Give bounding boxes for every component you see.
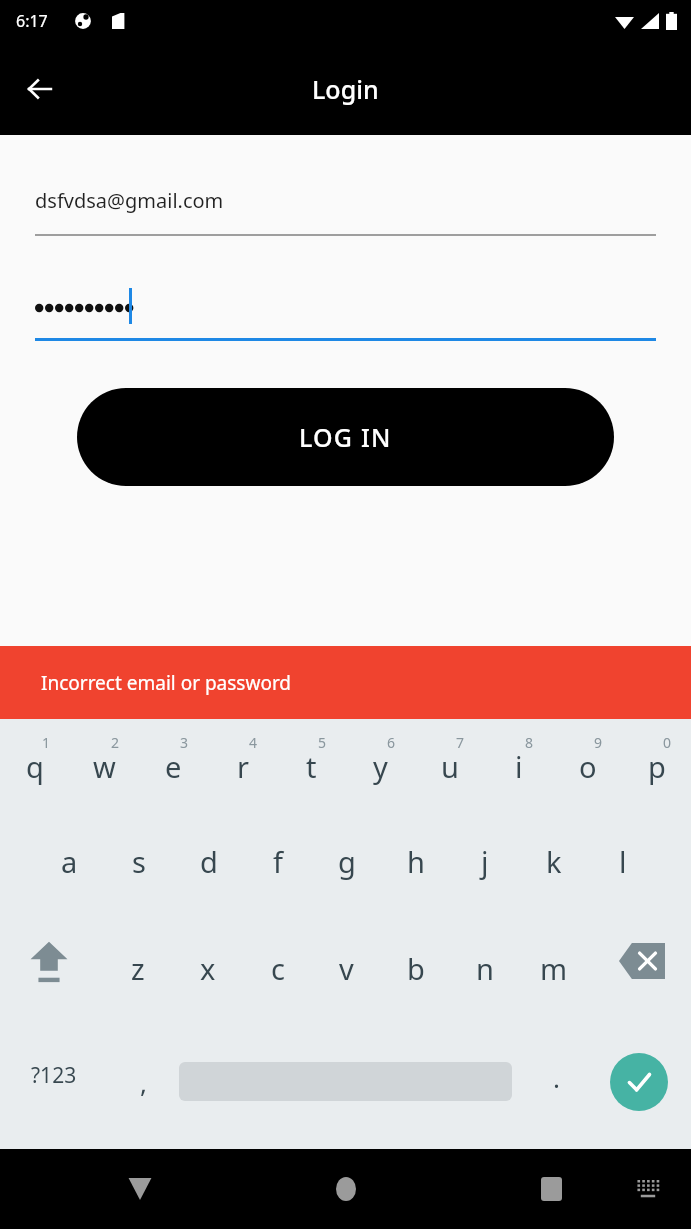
- staticText: o: [579, 747, 597, 786]
- staticText: 9: [594, 733, 603, 752]
- button[interactable]: c: [243, 933, 312, 1040]
- button[interactable]: 3: [139, 719, 208, 826]
- button[interactable]: h: [381, 826, 450, 933]
- button[interactable]: dsfvdsa@gmail.com: [35, 187, 656, 236]
- staticText: .: [553, 1060, 560, 1095]
- staticText: h: [407, 842, 425, 881]
- button[interactable]: 4: [208, 719, 277, 826]
- button[interactable]: 1: [0, 719, 70, 826]
- staticText: 2: [111, 733, 120, 752]
- button[interactable]: Shift: [14, 933, 84, 1013]
- staticText: u: [441, 747, 459, 786]
- staticText: r: [237, 747, 249, 786]
- staticText: f: [273, 842, 283, 881]
- button[interactable]: d: [174, 826, 243, 933]
- staticText: t: [306, 747, 317, 786]
- button[interactable]: Home: [316, 1159, 376, 1219]
- staticText: 1: [42, 733, 51, 752]
- button[interactable]: f: [243, 826, 312, 933]
- button[interactable]: a: [34, 826, 104, 933]
- staticText: 7: [456, 733, 465, 752]
- staticText: i: [515, 747, 523, 786]
- staticText: k: [546, 842, 562, 881]
- button[interactable]: 2: [70, 719, 139, 826]
- staticText: d: [200, 842, 218, 881]
- staticText: j: [481, 842, 489, 881]
- button[interactable]: g: [312, 826, 381, 933]
- staticText: w: [93, 747, 116, 786]
- button[interactable]: s: [104, 826, 174, 933]
- button[interactable]: k: [519, 826, 588, 933]
- staticText: Incorrect email or password: [41, 670, 292, 696]
- staticText: v: [339, 949, 354, 988]
- button[interactable]: 7: [415, 719, 484, 826]
- button[interactable]: j: [450, 826, 519, 933]
- staticText: 6: [387, 733, 396, 752]
- button[interactable]: ?123: [16, 1040, 92, 1110]
- staticText: x: [200, 949, 216, 988]
- button[interactable]: LOG IN: [77, 388, 614, 486]
- button[interactable]: 6: [346, 719, 415, 826]
- button[interactable]: 9: [553, 719, 622, 826]
- button[interactable]: Back: [110, 1159, 170, 1219]
- staticText: 6:17: [16, 10, 48, 32]
- button[interactable]: [35, 288, 656, 341]
- staticText: p: [648, 747, 666, 786]
- button[interactable]: Period: [528, 1040, 584, 1110]
- staticText: 4: [249, 733, 258, 752]
- staticText: n: [476, 949, 494, 988]
- button[interactable]: Comma: [115, 1040, 171, 1110]
- button[interactable]: Incorrect email or password: [0, 646, 691, 719]
- button[interactable]: Recents: [521, 1159, 581, 1219]
- staticText: ?123: [31, 1061, 77, 1090]
- button[interactable]: 0: [622, 719, 691, 826]
- staticText: 3: [180, 733, 189, 752]
- button[interactable]: 5: [277, 719, 346, 826]
- staticText: q: [26, 747, 44, 786]
- staticText: dsfvdsa@gmail.com: [35, 187, 224, 214]
- staticText: l: [619, 842, 627, 881]
- button[interactable]: b: [381, 933, 450, 1040]
- staticText: a: [61, 842, 78, 881]
- button[interactable]: Backspace: [607, 933, 677, 1013]
- staticText: 5: [318, 733, 327, 752]
- staticText: y: [373, 747, 388, 786]
- button[interactable]: z: [103, 933, 173, 1040]
- staticText: b: [407, 949, 425, 988]
- staticText: m: [540, 949, 568, 988]
- staticText: 8: [525, 733, 534, 752]
- button[interactable]: Back: [12, 61, 68, 117]
- button[interactable]: v: [312, 933, 381, 1040]
- staticText: g: [338, 842, 356, 881]
- staticText: ,: [140, 1065, 147, 1100]
- staticText: c: [271, 949, 285, 988]
- staticText: e: [165, 747, 182, 786]
- staticText: LOG IN: [299, 420, 392, 454]
- staticText: 0: [663, 733, 672, 752]
- staticText: Login: [312, 72, 379, 106]
- staticText: z: [131, 949, 145, 988]
- button[interactable]: l: [588, 826, 657, 933]
- button[interactable]: x: [173, 933, 243, 1040]
- button[interactable]: 8: [484, 719, 553, 826]
- button[interactable]: m: [519, 933, 588, 1040]
- staticText: s: [132, 842, 146, 881]
- button[interactable]: n: [450, 933, 519, 1040]
- button[interactable]: Enter: [610, 1053, 668, 1111]
- button[interactable]: Switch keyboard: [623, 1164, 673, 1214]
